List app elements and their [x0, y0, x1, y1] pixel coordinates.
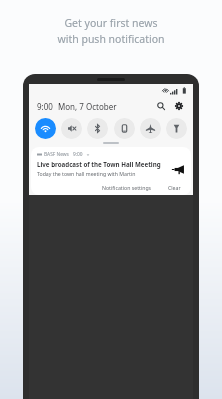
button[interactable]: Clear	[165, 183, 184, 192]
staticText: Today the town hall meeting with Martin …	[37, 170, 166, 177]
button[interactable]: Settings	[172, 99, 186, 113]
button[interactable]: Search	[154, 99, 168, 113]
staticText: with push notification	[57, 32, 165, 46]
button[interactable]: Airplane mode	[140, 118, 161, 139]
button[interactable]: Wi-Fi	[35, 118, 56, 139]
staticText: Mon, 7 October	[58, 101, 117, 112]
staticText: BASF News	[44, 151, 69, 158]
button[interactable]: Flashlight	[166, 118, 187, 139]
button[interactable]: Auto rotate	[114, 118, 135, 139]
staticText: 9:00	[73, 151, 83, 158]
staticText: Notification settings	[102, 184, 152, 191]
button[interactable]: Mute	[61, 118, 82, 139]
staticText: Clear	[168, 184, 181, 191]
staticText: Get your first news	[64, 16, 158, 30]
staticText: 9:00	[37, 101, 53, 112]
staticText: Live broadcast of the Town Hall Meeting …	[37, 160, 166, 168]
button[interactable]: Bluetooth	[87, 118, 108, 139]
button[interactable]: Notification settings	[99, 183, 155, 192]
button[interactable]: BASF News	[31, 147, 191, 195]
